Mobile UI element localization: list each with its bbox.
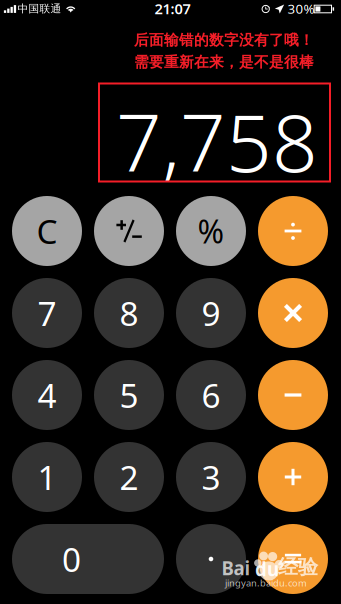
button[interactable]: 7	[12, 278, 82, 348]
button[interactable]: Minus	[258, 360, 328, 430]
button[interactable]: Multiply	[258, 278, 328, 348]
button[interactable]: 0	[12, 524, 164, 594]
staticText: 30%	[287, 0, 314, 17]
button[interactable]: 9	[176, 278, 246, 348]
button[interactable]: Decimal point	[176, 524, 246, 594]
staticText: 7,758	[116, 88, 318, 194]
staticText: 8	[119, 291, 138, 335]
staticText: 2	[119, 455, 138, 499]
button[interactable]: %	[176, 196, 246, 266]
button[interactable]: 3	[176, 442, 246, 512]
staticText: 9	[201, 291, 220, 335]
staticText: 经验	[278, 555, 318, 579]
button[interactable]: Equals	[258, 524, 328, 594]
staticText: du	[255, 557, 279, 581]
button[interactable]: 2	[94, 442, 164, 512]
button[interactable]: Plus or minus	[94, 196, 164, 266]
button[interactable]: 1	[12, 442, 82, 512]
button[interactable]: 4	[12, 360, 82, 430]
staticText: 5	[119, 373, 138, 417]
button[interactable]: Divide	[258, 196, 328, 266]
staticText: 3	[201, 455, 220, 499]
staticText: 需要重新在来，是不是很棒	[134, 53, 314, 71]
staticText: Bai	[221, 556, 250, 580]
staticText: 21:07	[154, 0, 190, 18]
staticText: 1	[37, 455, 56, 499]
staticText: 后面输错的数字没有了哦！	[134, 31, 314, 49]
staticText: %	[197, 210, 224, 252]
button[interactable]: 5	[94, 360, 164, 430]
button[interactable]: C	[12, 196, 82, 266]
staticText: 4	[37, 373, 56, 417]
staticText: 7	[37, 291, 56, 335]
button[interactable]: Plus	[258, 442, 328, 512]
staticText: 6	[201, 373, 220, 417]
staticText: 0	[62, 537, 81, 581]
button[interactable]: 8	[94, 278, 164, 348]
staticText: C	[36, 209, 57, 253]
button[interactable]: 6	[176, 360, 246, 430]
staticText: jingyan.baidu.com	[225, 577, 307, 589]
staticText: 中国联通	[17, 2, 61, 15]
